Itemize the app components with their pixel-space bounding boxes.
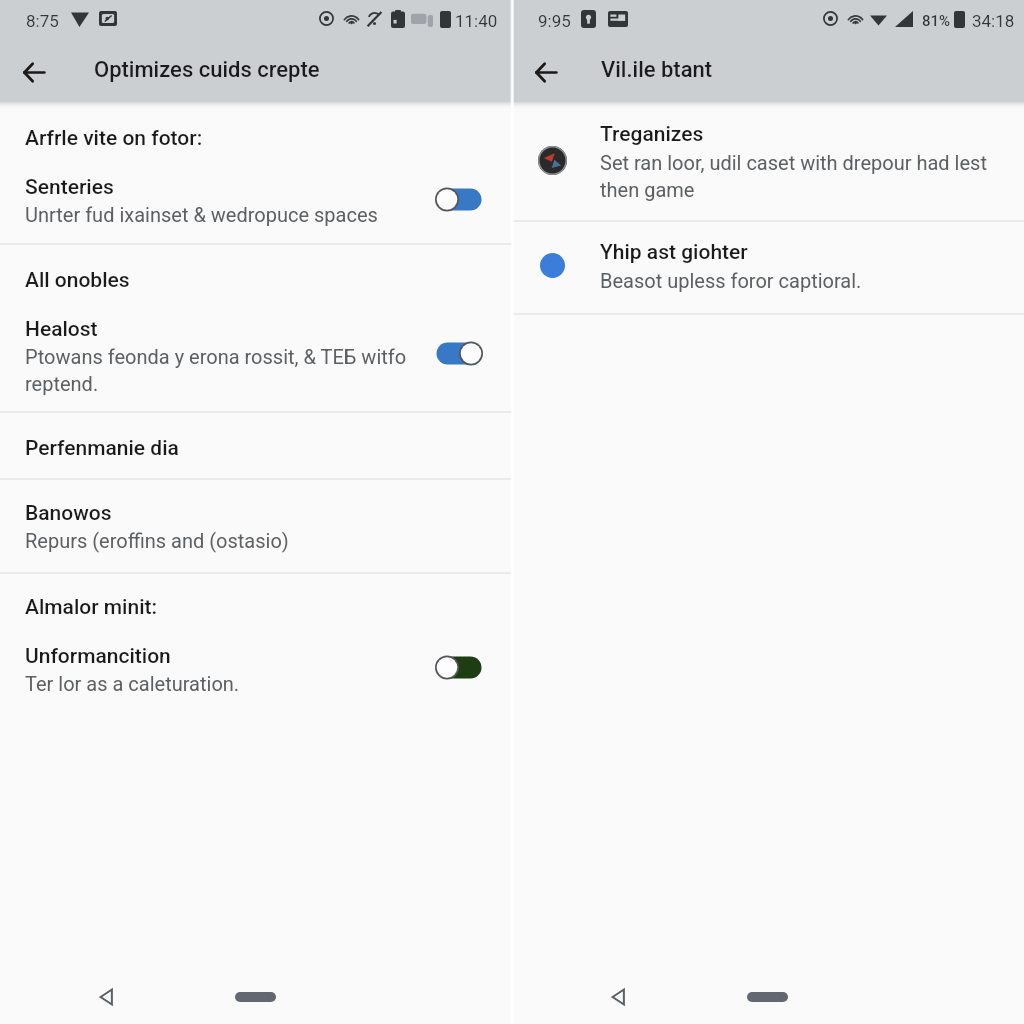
button[interactable]: Treganizes xyxy=(512,110,1024,220)
staticText: Beasot upless foror captioral. xyxy=(600,269,862,292)
staticText: Vil.ile btant xyxy=(601,57,713,83)
button[interactable]: Unformancition xyxy=(0,632,512,702)
staticText: Almalor minit: xyxy=(25,595,158,620)
button[interactable]: Toggle xyxy=(424,332,494,374)
button[interactable]: Home xyxy=(201,970,309,1024)
button[interactable]: Banowos xyxy=(0,490,512,560)
button[interactable]: Back xyxy=(6,42,62,102)
button[interactable]: Senteries xyxy=(0,160,512,230)
staticText: Yhip ast giohter xyxy=(600,240,748,265)
staticText: Repurs (eroffins and (ostasio) xyxy=(25,529,289,552)
staticText: 8:75 xyxy=(26,11,59,31)
staticText: 9:95 xyxy=(538,11,571,31)
button[interactable]: Toggle xyxy=(424,178,494,220)
staticText: Arfrle vite on fotor: xyxy=(25,126,203,151)
staticText: Banowos xyxy=(25,501,112,526)
staticText: 81% xyxy=(922,12,951,30)
staticText: Ptowans feonda y erona rossit, & TEБ wit… xyxy=(25,345,407,396)
button[interactable]: Back xyxy=(518,42,574,102)
button[interactable]: Home xyxy=(713,970,821,1024)
staticText: Unrter fud ixainset & wedropuce spaces xyxy=(25,203,378,226)
staticText: 11:40 xyxy=(455,11,498,31)
staticText: All onobles xyxy=(25,268,130,293)
staticText: Senteries xyxy=(25,175,114,200)
button[interactable]: Toggle xyxy=(424,646,494,688)
staticText: Treganizes xyxy=(600,122,704,147)
staticText: Set ran loor, udil caset with drepour ha… xyxy=(600,151,987,202)
staticText: 34:18 xyxy=(972,11,1015,31)
button[interactable]: Back xyxy=(592,970,646,1024)
button[interactable]: Back xyxy=(80,970,134,1024)
staticText: Unformancition xyxy=(25,644,171,669)
staticText: Optimizes cuids crepte xyxy=(94,57,320,83)
staticText: Perfenmanie dia xyxy=(25,436,179,461)
button[interactable]: Yhip ast giohter xyxy=(512,221,1024,313)
staticText: Healost xyxy=(25,317,98,342)
staticText: Ter lor as a caleturation. xyxy=(25,672,240,695)
button[interactable]: Healost xyxy=(0,305,512,401)
